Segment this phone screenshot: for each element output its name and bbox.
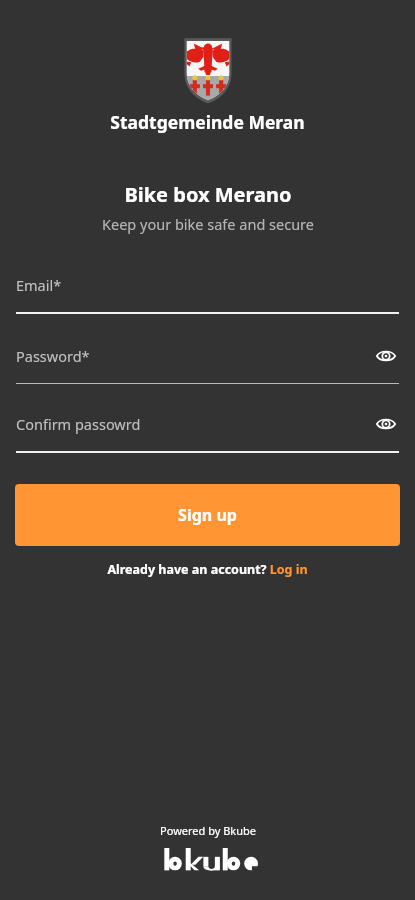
button[interactable]: Email* — [16, 270, 399, 314]
button[interactable]: Sign up — [15, 484, 400, 546]
staticText: Confirm passowrd — [16, 414, 141, 434]
staticText: Already have an account? Log in — [107, 561, 308, 578]
staticText: Email* — [16, 275, 62, 295]
button[interactable]: Show password — [373, 343, 399, 369]
staticText: Bike box Merano — [124, 181, 292, 208]
staticText: Sign up — [178, 504, 237, 526]
button[interactable]: Password* — [16, 341, 399, 384]
button[interactable]: Show password — [373, 411, 399, 437]
staticText: Stadtgemeinde Meran — [110, 110, 305, 134]
staticText: Powered by Bkube — [160, 823, 256, 838]
staticText: Password* — [16, 346, 90, 366]
button[interactable]: Confirm passowrd — [16, 409, 399, 453]
staticText: Keep your bike safe and secure — [102, 214, 314, 234]
button[interactable]: Already have an account? Log in — [99, 558, 316, 581]
